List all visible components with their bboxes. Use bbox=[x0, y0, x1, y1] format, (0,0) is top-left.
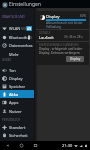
button[interactable]: Nutzer bbox=[0, 107, 34, 115]
button[interactable]: Speicher bbox=[0, 82, 34, 90]
button[interactable]: Mehr bbox=[0, 50, 34, 58]
button[interactable]: Display bbox=[66, 56, 84, 62]
button[interactable]: Standort bbox=[0, 123, 34, 131]
staticText: Laufzeit bbox=[39, 35, 54, 40]
staticText: ENERGIEVERBRAUCH ANPASSEN bbox=[39, 43, 79, 47]
staticText: Sicherheit bbox=[9, 133, 28, 138]
staticText: Display bbox=[9, 76, 23, 81]
button[interactable]: Datenverbrauch bbox=[0, 41, 34, 49]
staticText: AN bbox=[27, 27, 32, 31]
staticText: 60% bbox=[80, 14, 86, 18]
staticText: Standort bbox=[9, 125, 26, 130]
staticText: AUS bbox=[28, 36, 32, 40]
staticText: Display: Zeitraum verlängern bbox=[39, 51, 80, 55]
staticText: Bluetooth bbox=[9, 35, 28, 40]
staticText: DRAHTLOS UND NETZWERKE bbox=[2, 15, 34, 19]
button[interactable]: Akku bbox=[0, 90, 34, 98]
staticText: Apps bbox=[9, 100, 19, 105]
staticText: Nutzer bbox=[9, 109, 22, 114]
button[interactable]: Sicherheit bbox=[0, 131, 34, 139]
staticText: Akku bbox=[9, 92, 19, 97]
staticText: Ton bbox=[9, 68, 16, 73]
staticText: Einstellungen bbox=[9, 1, 41, 8]
button[interactable]: Bluetooth bbox=[0, 33, 34, 41]
button[interactable]: Recent apps bbox=[31, 141, 39, 150]
staticText: Mehr bbox=[9, 52, 20, 57]
staticText: GERÄT bbox=[2, 58, 12, 62]
button[interactable]: Apps bbox=[0, 98, 34, 106]
staticText: 3 h 36 m 28 s bbox=[64, 35, 83, 39]
button[interactable]: Home bbox=[17, 141, 25, 150]
staticText: Vollladung bbox=[46, 25, 61, 29]
staticText: DETAILS bbox=[39, 31, 51, 35]
other: Battery bbox=[84, 144, 88, 148]
staticText: Display bbox=[70, 57, 81, 61]
other: Signal strength bbox=[79, 144, 83, 148]
staticText: Speicher bbox=[9, 84, 26, 89]
button[interactable]: WLAN bbox=[0, 24, 34, 32]
staticText: Display - erfolgreich und leider bbox=[39, 47, 83, 51]
button[interactable]: AUS bbox=[28, 35, 32, 40]
staticText: WLAN bbox=[9, 26, 21, 31]
button[interactable]: AN bbox=[21, 26, 32, 31]
button[interactable]: Display bbox=[0, 74, 34, 82]
staticText: Display bbox=[46, 14, 60, 19]
button[interactable]: Ton bbox=[0, 66, 34, 74]
staticText: Datenverbrauch bbox=[9, 43, 34, 48]
button[interactable]: Back bbox=[3, 141, 11, 150]
staticText: PERSÖNLICH bbox=[2, 118, 21, 122]
staticText: Akkuverbrauch seit letzter bbox=[46, 21, 83, 25]
button[interactable]: Navigation up bbox=[1, 1, 8, 8]
other: Wi-Fi bbox=[74, 144, 78, 148]
staticText: 21:30 bbox=[62, 143, 73, 148]
